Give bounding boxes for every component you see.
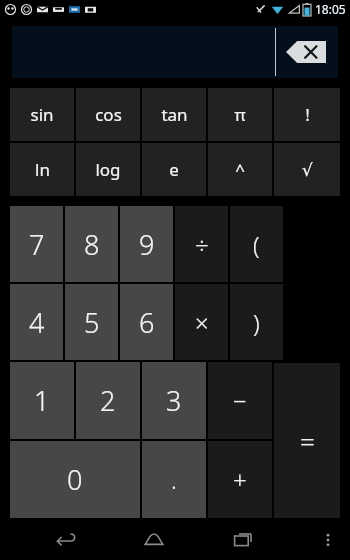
button[interactable]: 4 — [10, 284, 63, 360]
button[interactable]: + — [208, 441, 272, 518]
button[interactable]: ^ — [208, 143, 272, 196]
staticText: sin — [30, 103, 54, 126]
button[interactable]: π — [208, 88, 272, 141]
staticText: 3 — [166, 382, 182, 419]
button[interactable]: Delete — [12, 26, 338, 78]
button[interactable]: 5 — [65, 284, 118, 360]
button[interactable]: 6 — [120, 284, 173, 360]
staticText: × — [195, 306, 209, 339]
staticText: 6 — [139, 304, 155, 341]
button[interactable]: Home — [132, 520, 176, 560]
staticText: 1 — [34, 382, 50, 419]
staticText: 5 — [84, 304, 100, 341]
staticText: ÷ — [195, 228, 209, 261]
staticText: e — [169, 158, 179, 181]
staticText: = — [300, 423, 315, 458]
button[interactable]: Back — [44, 520, 88, 560]
button[interactable]: 8 — [65, 206, 118, 282]
button[interactable]: More options — [310, 522, 346, 558]
staticText: . — [171, 463, 177, 496]
staticText: 9 — [139, 226, 155, 263]
staticText: 18:05 — [315, 1, 346, 17]
button[interactable]: ÷ — [175, 206, 228, 282]
button[interactable]: √ — [274, 143, 340, 196]
button[interactable]: 2 — [76, 362, 140, 439]
button[interactable]: 7 — [10, 206, 63, 282]
button[interactable]: 9 — [120, 206, 173, 282]
staticText: log — [95, 158, 121, 181]
button[interactable]: = — [274, 363, 340, 518]
staticText: 4 — [29, 304, 45, 341]
button[interactable]: ln — [10, 143, 74, 196]
staticText: 2 — [100, 382, 116, 419]
button[interactable]: × — [175, 284, 228, 360]
staticText: + — [233, 463, 247, 496]
staticText: 0 — [67, 461, 83, 498]
staticText: 7 — [29, 226, 45, 263]
staticText: cos — [95, 103, 122, 126]
staticText: π — [234, 103, 246, 126]
button[interactable]: Recents — [221, 520, 265, 560]
button[interactable]: sin — [10, 88, 74, 141]
button[interactable]: cos — [76, 88, 140, 141]
staticText: √ — [302, 160, 313, 180]
button[interactable]: 0 — [10, 441, 140, 518]
staticText: tan — [161, 103, 188, 126]
button[interactable]: − — [208, 362, 272, 439]
staticText: − — [233, 384, 247, 417]
button[interactable]: . — [142, 441, 206, 518]
staticText: ) — [253, 306, 260, 339]
button[interactable]: 1 — [10, 362, 74, 439]
staticText: ! — [305, 103, 310, 126]
button[interactable]: 3 — [142, 362, 206, 439]
button[interactable]: log — [76, 143, 140, 196]
button[interactable]: ! — [274, 88, 340, 141]
staticText: ln — [35, 158, 50, 181]
button[interactable]: ) — [230, 284, 283, 360]
staticText: ^ — [235, 158, 245, 181]
button[interactable]: Delete — [286, 41, 326, 63]
staticText: ( — [253, 228, 260, 261]
button[interactable]: tan — [142, 88, 206, 141]
button[interactable]: ( — [230, 206, 283, 282]
staticText: 8 — [84, 226, 100, 263]
button[interactable]: e — [142, 143, 206, 196]
